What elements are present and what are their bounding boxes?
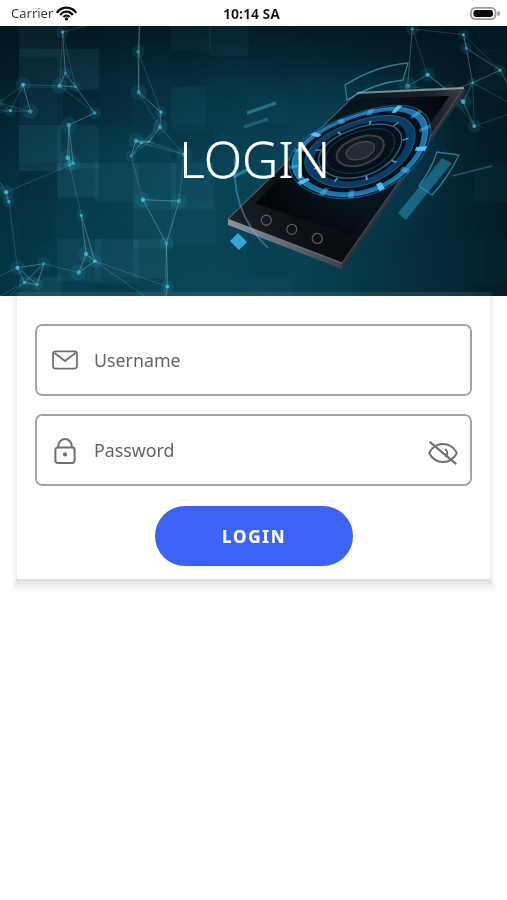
staticText: LOGIN (222, 525, 287, 548)
staticText: Carrier (11, 4, 54, 22)
button[interactable]: LOGIN (155, 506, 353, 566)
button[interactable]: Password (35, 414, 472, 486)
button[interactable]: Show password (426, 436, 460, 470)
staticText: LOGIN (179, 125, 331, 193)
button[interactable]: Username (35, 324, 472, 396)
staticText: Username (94, 348, 181, 372)
staticText: Password (94, 438, 175, 462)
staticText: 10:14 SA (223, 4, 281, 23)
